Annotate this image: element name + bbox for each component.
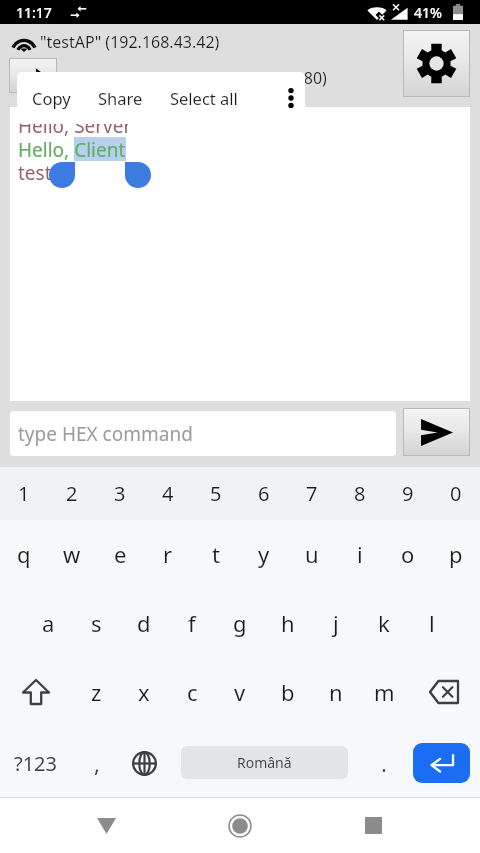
staticText: w bbox=[63, 539, 81, 569]
staticText: type HEX command bbox=[18, 421, 193, 447]
staticText: y bbox=[258, 539, 270, 569]
button[interactable]: Settings bbox=[404, 31, 469, 96]
button[interactable]: More options bbox=[266, 72, 305, 124]
button[interactable]: n bbox=[312, 657, 360, 726]
staticText: Română bbox=[237, 753, 292, 772]
staticText: 3 bbox=[114, 480, 126, 507]
button[interactable]: p bbox=[432, 520, 480, 588]
button[interactable]: m bbox=[360, 657, 408, 726]
button[interactable]: q bbox=[0, 520, 48, 588]
button[interactable]: type HEX command bbox=[10, 411, 396, 456]
button[interactable]: 8 bbox=[336, 467, 384, 520]
staticText: Select all bbox=[170, 87, 238, 109]
staticText: . bbox=[381, 748, 387, 778]
staticText: 4 bbox=[162, 480, 174, 507]
staticText: j bbox=[333, 608, 339, 638]
button[interactable]: Change language bbox=[123, 726, 165, 800]
staticText: c bbox=[187, 677, 198, 707]
staticText: t bbox=[212, 539, 220, 569]
button[interactable]: y bbox=[240, 520, 288, 588]
button[interactable]: r bbox=[144, 520, 192, 588]
staticText: 9 bbox=[402, 480, 414, 507]
button[interactable]: Copy bbox=[26, 72, 76, 124]
staticText: f bbox=[188, 608, 196, 638]
button[interactable]: Enter bbox=[413, 743, 470, 783]
button[interactable]: 2 bbox=[48, 467, 96, 520]
staticText: u bbox=[305, 539, 319, 569]
staticText: v bbox=[234, 677, 246, 707]
button[interactable]: Shift bbox=[0, 657, 72, 726]
button[interactable]: Recents bbox=[333, 799, 413, 852]
button[interactable]: 0 bbox=[432, 467, 480, 520]
button[interactable]: Send bbox=[404, 409, 469, 455]
staticText: 5 bbox=[210, 480, 222, 507]
staticText: srv (port 8080) bbox=[218, 67, 327, 89]
button[interactable]: 3 bbox=[96, 467, 144, 520]
staticText: 6 bbox=[258, 480, 270, 507]
button[interactable]: f bbox=[168, 588, 216, 657]
staticText: , bbox=[94, 748, 100, 778]
staticText: z bbox=[91, 677, 102, 707]
button[interactable]: h bbox=[264, 588, 312, 657]
button[interactable]: c bbox=[168, 657, 216, 726]
staticText: test bbox=[18, 160, 52, 186]
staticText: l bbox=[429, 608, 435, 638]
button[interactable]: Share bbox=[91, 72, 149, 124]
staticText: a bbox=[42, 608, 55, 638]
button[interactable]: b bbox=[264, 657, 312, 726]
staticText: x bbox=[138, 677, 150, 707]
staticText: o bbox=[401, 539, 415, 569]
staticText: 1 bbox=[18, 480, 30, 507]
button[interactable]: 5 bbox=[192, 467, 240, 520]
button[interactable]: k bbox=[360, 588, 408, 657]
staticText: 41% bbox=[414, 3, 442, 22]
button[interactable]: u bbox=[288, 520, 336, 588]
button[interactable]: Select all bbox=[164, 72, 244, 124]
button[interactable]: l bbox=[408, 588, 456, 657]
button[interactable]: 6 bbox=[240, 467, 288, 520]
staticText: 7 bbox=[306, 480, 318, 507]
staticText: Hello, Client bbox=[18, 137, 126, 163]
button[interactable]: 9 bbox=[384, 467, 432, 520]
staticText: s bbox=[91, 608, 102, 638]
button[interactable]: Română bbox=[181, 746, 348, 779]
staticText: r bbox=[163, 539, 173, 569]
staticText: b bbox=[281, 677, 295, 707]
staticText: ?123 bbox=[14, 750, 57, 777]
staticText: p bbox=[449, 539, 463, 569]
staticText: 11:17 bbox=[16, 3, 52, 22]
staticText: e bbox=[114, 539, 127, 569]
button[interactable]: x bbox=[120, 657, 168, 726]
button[interactable]: e bbox=[96, 520, 144, 588]
button[interactable]: v bbox=[216, 657, 264, 726]
button[interactable]: i bbox=[336, 520, 384, 588]
button[interactable]: Restart bbox=[10, 59, 56, 92]
button[interactable]: o bbox=[384, 520, 432, 588]
button[interactable]: z bbox=[72, 657, 120, 726]
staticText: i bbox=[357, 539, 363, 569]
button[interactable]: Home bbox=[200, 799, 280, 852]
button[interactable]: ?123 bbox=[0, 726, 71, 800]
button[interactable]: 4 bbox=[144, 467, 192, 520]
staticText: h bbox=[281, 608, 295, 638]
button[interactable]: 7 bbox=[288, 467, 336, 520]
button[interactable]: d bbox=[120, 588, 168, 657]
button[interactable]: Backspace bbox=[408, 657, 480, 726]
button[interactable]: 1 bbox=[0, 467, 48, 520]
staticText: Share bbox=[98, 87, 143, 109]
staticText: n bbox=[329, 677, 343, 707]
button[interactable]: w bbox=[48, 520, 96, 588]
button[interactable]: , bbox=[71, 726, 123, 800]
staticText: Copy bbox=[32, 87, 71, 109]
staticText: d bbox=[137, 608, 151, 638]
button[interactable]: t bbox=[192, 520, 240, 588]
staticText: 0 bbox=[450, 480, 462, 507]
button[interactable]: Back bbox=[66, 799, 146, 852]
button[interactable]: g bbox=[216, 588, 264, 657]
button[interactable]: j bbox=[312, 588, 360, 657]
button[interactable]: a bbox=[24, 588, 72, 657]
staticText: Hello, Server bbox=[18, 113, 132, 139]
button[interactable]: s bbox=[72, 588, 120, 657]
button[interactable]: . bbox=[358, 726, 410, 800]
staticText: m bbox=[374, 677, 395, 707]
